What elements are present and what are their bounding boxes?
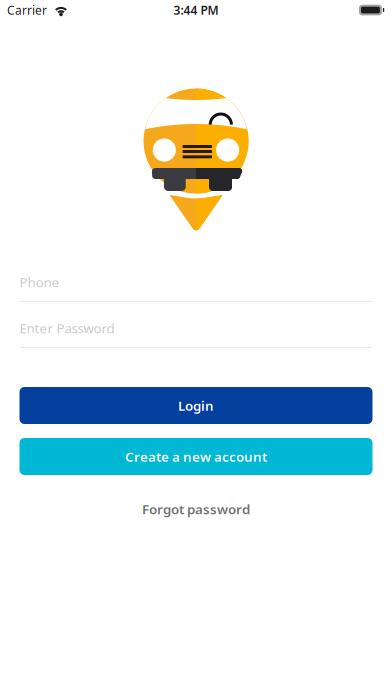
staticText: Create a new account <box>125 448 267 465</box>
staticText: 3:44 PM <box>173 2 218 18</box>
button[interactable]: Enter Password <box>19 316 372 348</box>
button[interactable]: Phone <box>19 270 372 302</box>
button[interactable]: Login <box>19 387 372 424</box>
staticText: Enter Password <box>19 319 114 337</box>
staticText: Phone <box>19 273 59 291</box>
button[interactable]: Forgot password <box>19 499 372 519</box>
staticText: Forgot password <box>142 500 250 518</box>
staticText: Login <box>178 397 214 414</box>
button[interactable]: Create a new account <box>19 438 372 475</box>
staticText: Carrier <box>7 2 47 18</box>
